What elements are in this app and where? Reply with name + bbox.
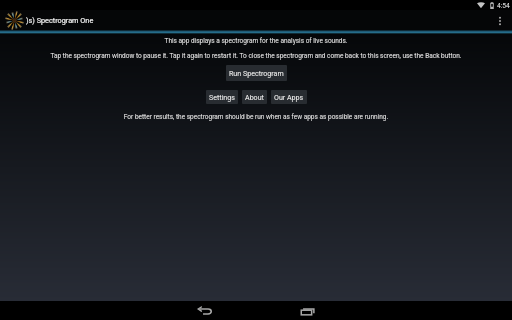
staticText: Tap the spectrogram window to pause it. … [6, 52, 506, 60]
button[interactable]: About [242, 90, 267, 104]
staticText: 4:54 [497, 2, 510, 10]
staticText: For better results, the spectrogram shou… [6, 113, 506, 121]
staticText: About [245, 93, 264, 101]
button[interactable]: Recent apps [287, 301, 327, 320]
button[interactable]: Settings [206, 90, 238, 104]
staticText: Settings [209, 93, 235, 101]
staticText: )s) Spectrogram One [26, 16, 94, 25]
button[interactable]: Run Spectrogram [226, 65, 287, 81]
button[interactable]: Back [185, 301, 225, 320]
button[interactable]: More options [487, 10, 512, 31]
staticText: Run Spectrogram [229, 69, 284, 77]
button[interactable]: Our Apps [271, 90, 307, 104]
staticText: This app displays a spectrogram for the … [6, 37, 506, 45]
staticText: Our Apps [274, 93, 304, 101]
